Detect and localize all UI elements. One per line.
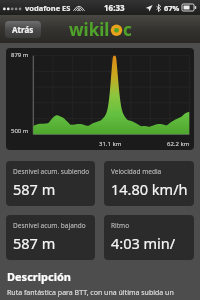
- button[interactable]: Velocidad media: [104, 161, 194, 206]
- staticText: Desnivel acum. subiendo: [13, 167, 90, 176]
- staticText: c: [123, 18, 132, 41]
- staticText: Velocidad media: [111, 167, 162, 176]
- staticText: 500 m: [11, 127, 29, 135]
- button[interactable]: 879 m: [6, 48, 194, 150]
- button[interactable]: Desnivel acum. bajando: [6, 215, 95, 260]
- staticText: Ruta fantástica para BTT, con una última…: [7, 288, 174, 298]
- staticText: wikil: [69, 18, 110, 41]
- button[interactable]: Desnivel acum. subiendo: [6, 161, 95, 206]
- staticText: Ritmo: [111, 221, 130, 230]
- staticText: Atrás: [12, 24, 34, 35]
- staticText: Descripción: [7, 269, 71, 284]
- staticText: 587 m: [13, 179, 56, 199]
- button[interactable]: Ritmo: [104, 215, 194, 260]
- staticText: 16:33: [104, 2, 125, 13]
- staticText: 879 m: [11, 51, 29, 59]
- button[interactable]: Atrás: [5, 21, 41, 38]
- staticText: Desnivel acum. bajando: [13, 221, 86, 230]
- staticText: 587 m: [13, 233, 56, 253]
- staticText: 4:03 min/km: [111, 233, 190, 253]
- staticText: 67%: [164, 3, 180, 13]
- staticText: 62.2 km: [167, 140, 190, 148]
- staticText: 31.1 km: [99, 140, 122, 148]
- staticText: 14.80 km/h: [111, 179, 188, 199]
- staticText: vodafone ES: [25, 3, 71, 13]
